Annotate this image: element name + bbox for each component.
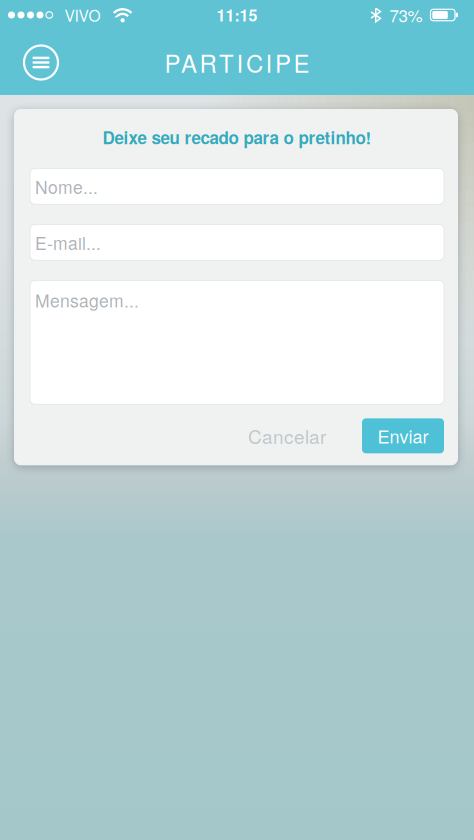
staticText: 11:15 [216,3,257,26]
staticText: E-mail... [35,230,101,255]
staticText: VIVO [65,4,101,26]
button[interactable]: Enviar [362,418,444,453]
button[interactable]: Cancelar [248,422,326,449]
button[interactable]: Nome... [30,168,444,204]
staticText: Cancelar [248,422,326,449]
button[interactable]: Menu [24,45,58,79]
staticText: Nome... [35,174,98,199]
staticText: Deixe seu recado para o pretinho! [102,125,371,149]
button[interactable]: E-mail... [30,224,444,260]
staticText: PARTICIPE [164,45,309,80]
staticText: Enviar [377,423,428,449]
staticText: 73% [389,3,422,27]
staticText: Mensagem... [35,287,139,312]
button[interactable]: Mensagem... [30,280,444,404]
